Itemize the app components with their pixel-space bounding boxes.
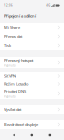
button[interactable]: Síť VPN (0, 72, 64, 80)
button[interactable]: Tisk (0, 41, 64, 50)
button[interactable]: Home (28, 131, 36, 139)
staticText: Tisk (4, 43, 11, 48)
button[interactable]: Privátní DNS (0, 88, 64, 99)
button[interactable]: Režim Letadlo (0, 80, 64, 88)
staticText: 12:06 (4, 4, 13, 7)
staticText: Připojení a sdílení (4, 13, 36, 19)
staticText: Vypnuto (4, 95, 16, 98)
staticText: Bezdrátové displeje (4, 122, 38, 127)
staticText: 4G (46, 4, 50, 7)
staticText: Přenosný hotspot (4, 58, 33, 63)
staticText: Vypnuto (4, 64, 16, 67)
staticText: Privátní DNS (4, 89, 26, 94)
staticText: Přenos dat (4, 34, 22, 39)
button[interactable]: Přenos dat (0, 32, 64, 41)
staticText: Režim Letadlo (4, 81, 28, 87)
staticText: Vysílat dat (4, 107, 21, 112)
button[interactable]: Recent apps (46, 131, 54, 139)
button[interactable]: Back (10, 131, 18, 139)
button[interactable]: Bezdrátové displeje (0, 120, 64, 129)
staticText: Mi Share (4, 25, 20, 30)
button[interactable]: Mi Share (0, 23, 64, 32)
button[interactable]: Vysílat dat (0, 105, 64, 114)
staticText: Síť VPN (4, 73, 16, 79)
button[interactable]: Přenosný hotspot (0, 57, 64, 68)
